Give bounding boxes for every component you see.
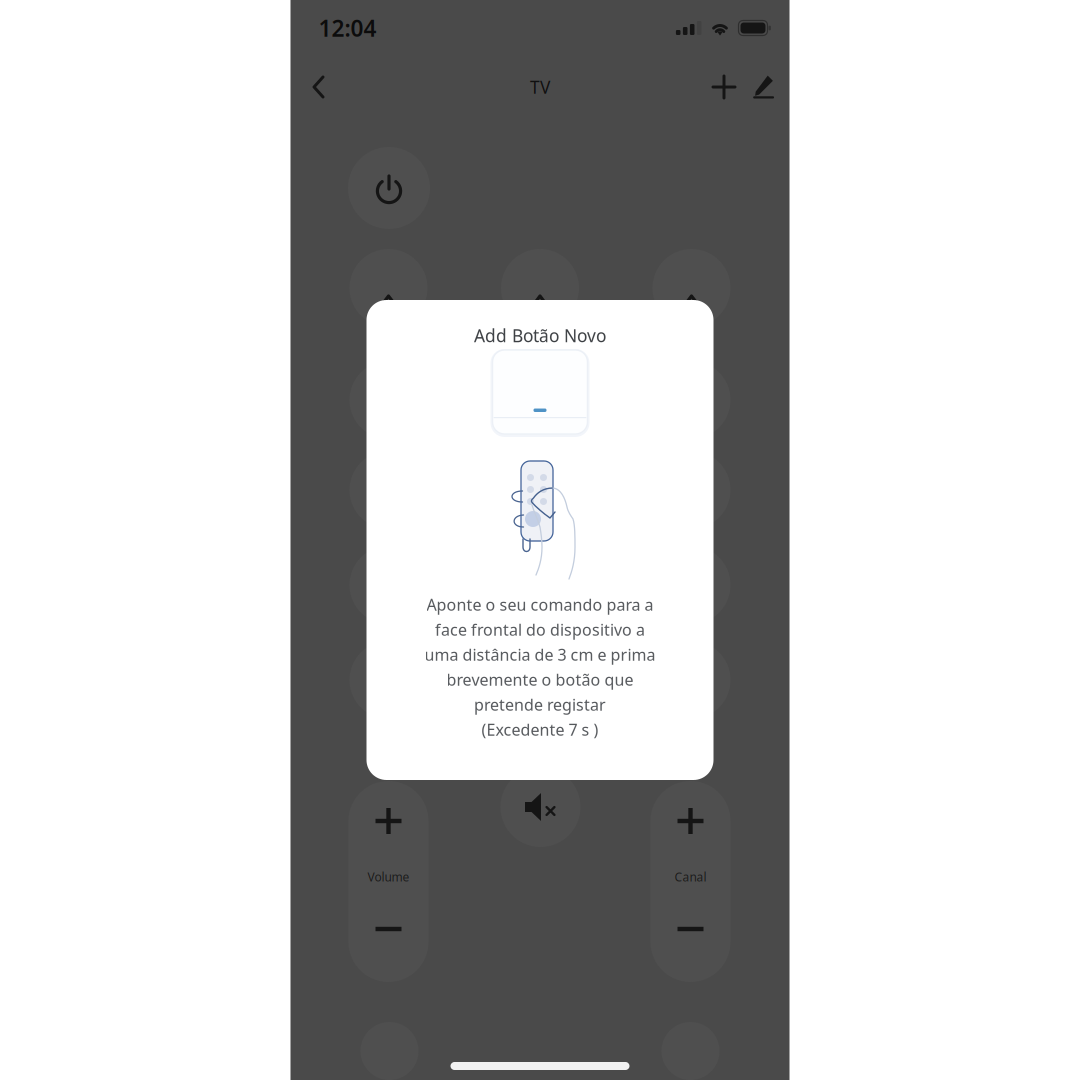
button[interactable]: Back (297, 61, 339, 113)
staticText: Add Botão Novo (474, 324, 606, 347)
button[interactable]: Canal down (650, 899, 730, 959)
staticText: uma distância de 3 cm e prima (424, 644, 655, 665)
staticText: pretende registar (474, 694, 606, 715)
staticText: TV (530, 75, 550, 98)
button[interactable]: Volume up (348, 791, 428, 851)
button[interactable]: Power (348, 147, 430, 229)
button[interactable]: Canal up (650, 791, 730, 851)
staticText: Volume (367, 869, 409, 885)
staticText: 12:04 (318, 13, 376, 43)
button[interactable]: Mute (500, 767, 580, 847)
button[interactable]: Edit (746, 61, 775, 113)
staticText: brevemente o botão que (446, 669, 633, 690)
button[interactable]: Add (701, 60, 746, 113)
button[interactable]: Volume down (348, 899, 428, 959)
staticText: face frontal do dispositivo a (435, 619, 645, 640)
staticText: Canal (674, 869, 706, 885)
staticText: (Excedente 7 s ) (481, 719, 598, 740)
staticText: Aponte o seu comando para a (426, 594, 653, 615)
